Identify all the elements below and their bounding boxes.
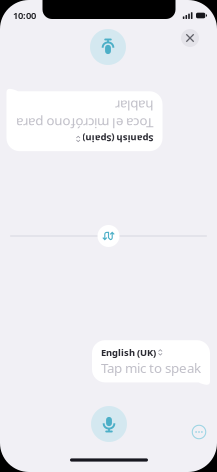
- staticText: Toca el micrófono para hablar: [15, 108, 152, 143]
- staticText: 10:00: [13, 9, 36, 22]
- button[interactable]: Swap languages: [97, 225, 119, 247]
- staticText: English (UK): [101, 346, 156, 359]
- button[interactable]: Record Spanish: [90, 29, 126, 65]
- button[interactable]: More options: [191, 424, 207, 440]
- staticText: Tap mic to speak: [101, 359, 201, 377]
- button[interactable]: Record English: [91, 406, 127, 442]
- button[interactable]: Close: [181, 29, 199, 47]
